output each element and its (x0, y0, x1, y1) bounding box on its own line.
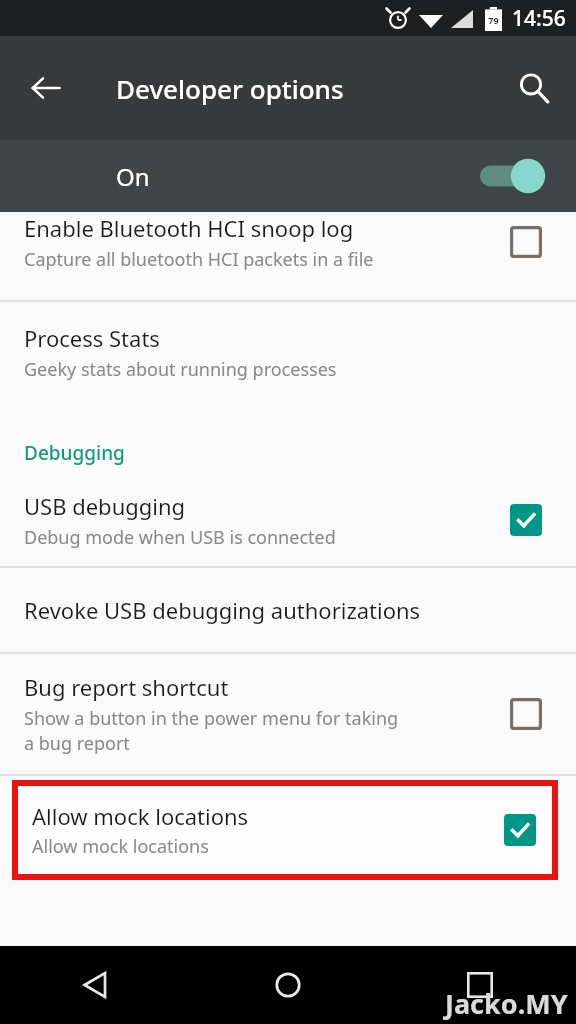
button[interactable]: Enable Bluetooth HCI snoop log (0, 212, 576, 300)
button[interactable]: Recent apps (384, 946, 576, 1024)
button[interactable]: Bug report shortcut (0, 654, 576, 774)
staticText: Developer options (116, 71, 344, 106)
staticText: Revoke USB debugging authorizations (24, 595, 421, 625)
staticText: 79 (488, 14, 499, 26)
staticText: Capture all bluetooth HCI packets in a f… (24, 247, 374, 272)
button[interactable]: Unchecked (504, 692, 548, 736)
button[interactable]: Revoke USB debugging authorizations (0, 568, 576, 652)
button[interactable]: On (0, 140, 576, 212)
button[interactable]: Back (18, 60, 74, 116)
staticText: 14:56 (512, 4, 566, 33)
staticText: Allow mock locations (32, 834, 209, 859)
button[interactable]: Unchecked (504, 220, 548, 264)
staticText: a bug report (24, 731, 130, 756)
button[interactable]: Process Stats (0, 302, 576, 402)
button[interactable]: Checked (498, 808, 542, 852)
staticText: Show a button in the power menu for taki… (24, 706, 399, 731)
button[interactable]: Allow mock locations (18, 786, 552, 874)
button[interactable]: Home (192, 946, 384, 1024)
staticText: Jacko.MY (445, 985, 568, 1022)
staticText: Geeky stats about running processes (24, 357, 337, 382)
staticText: Debugging (24, 440, 125, 466)
staticText: Bug report shortcut (24, 672, 229, 702)
staticText: Process Stats (24, 323, 160, 353)
staticText: Allow mock locations (32, 801, 249, 831)
button[interactable]: USB debugging (0, 474, 576, 566)
staticText: USB debugging (24, 491, 186, 521)
staticText: Enable Bluetooth HCI snoop log (24, 213, 354, 243)
button[interactable]: Search (506, 60, 562, 116)
staticText: On (116, 160, 150, 193)
button[interactable]: Back (0, 946, 192, 1024)
staticText: Debug mode when USB is connected (24, 525, 336, 550)
button[interactable]: Checked (504, 498, 548, 542)
